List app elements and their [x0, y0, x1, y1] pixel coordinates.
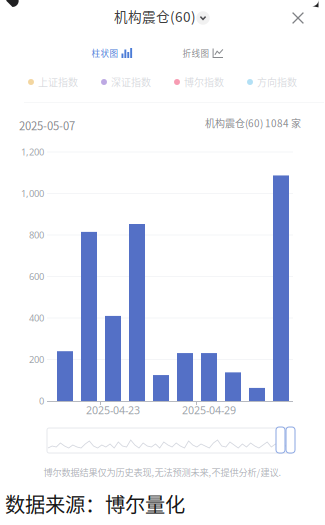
staticText: 1,200 [21, 146, 44, 158]
staticText: 2025-05-07 [19, 117, 75, 133]
staticText: 数据来源：博尔量化 [5, 489, 185, 518]
button[interactable]: 上证指数 [28, 74, 78, 90]
staticText: 0 [39, 395, 44, 407]
staticText: 200 [29, 353, 44, 366]
button[interactable]: Close [281, 1, 315, 35]
button[interactable]: Adjust range [285, 425, 296, 455]
staticText: 2025-04-29 [182, 403, 236, 417]
button[interactable]: Switch indicator [191, 6, 215, 30]
staticText: 博尔指数 [184, 75, 224, 89]
staticText: 1,000 [21, 187, 44, 200]
button[interactable]: Adjust range [275, 425, 286, 455]
staticText: 600 [29, 270, 44, 283]
staticText: 方向指数 [257, 75, 297, 89]
staticText: 400 [29, 312, 44, 324]
staticText: 博尔数据结果仅为历史表现,无法预测未来,不提供分析/建议. [43, 465, 281, 479]
staticText: 机构震仓(60) 1084 家 [205, 116, 301, 130]
staticText: 柱状图 [91, 47, 118, 59]
staticText: 2025-04-23 [86, 403, 140, 417]
staticText: 折线图 [182, 47, 209, 59]
staticText: 机构震仓(60) [114, 6, 196, 26]
staticText: 深证指数 [111, 75, 151, 89]
button[interactable]: 深证指数 [101, 74, 151, 90]
button[interactable]: 折线图 [170, 43, 236, 63]
button[interactable]: 博尔指数 [174, 74, 224, 90]
staticText: 上证指数 [38, 75, 78, 89]
button[interactable]: 方向指数 [247, 74, 297, 90]
staticText: 800 [29, 229, 44, 241]
button[interactable]: 柱状图 [79, 43, 145, 63]
